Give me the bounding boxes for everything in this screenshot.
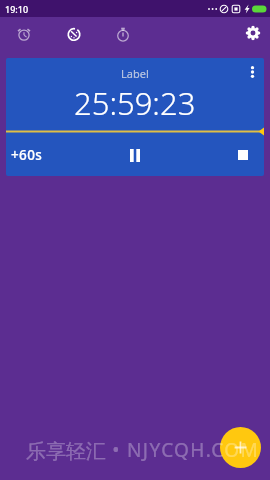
staticText: 乐享轻汇 — [26, 439, 106, 464]
staticText: +60s — [11, 146, 43, 164]
button[interactable]: Settings — [233, 13, 270, 53]
staticText: 19:10 — [5, 3, 29, 15]
staticText: Label — [121, 66, 149, 81]
button[interactable]: Timer — [103, 14, 143, 54]
button[interactable]: Stop — [222, 134, 264, 176]
button[interactable]: +60s — [6, 134, 51, 176]
button[interactable]: More options — [239, 58, 264, 86]
button[interactable]: Clock — [54, 14, 94, 54]
staticText: 25:59:23 — [74, 82, 196, 124]
staticText: • NJYCQH.COM — [106, 437, 259, 463]
button[interactable]: Add timer — [220, 427, 261, 468]
button[interactable]: Alarm — [4, 14, 44, 54]
button[interactable]: Pause — [114, 134, 156, 176]
